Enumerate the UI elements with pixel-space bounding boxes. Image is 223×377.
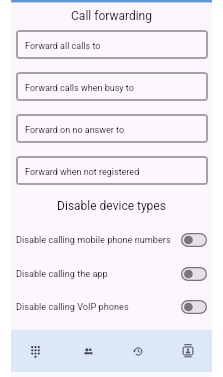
- button[interactable]: Disable calling the app: [11, 257, 212, 291]
- button[interactable]: Forward calls when busy to: [16, 72, 208, 101]
- button[interactable]: Voicemail: [166, 330, 210, 372]
- staticText: Forward when not registered: [25, 167, 140, 178]
- button[interactable]: Forward when not registered: [16, 156, 208, 185]
- staticText: Forward on no answer to: [25, 125, 125, 136]
- button[interactable]: Recents: [115, 330, 159, 372]
- button[interactable]: Forward on no answer to: [16, 114, 208, 143]
- button[interactable]: Disable calling VoIP phones: [11, 290, 212, 324]
- button[interactable]: Contacts: [66, 330, 110, 372]
- staticText: Call forwarding: [11, 9, 212, 23]
- staticText: Disable calling VoIP phones: [16, 302, 181, 313]
- staticText: Forward all calls to: [25, 41, 101, 52]
- staticText: Disable calling the app: [16, 269, 181, 280]
- button[interactable]: Disable calling mobile phone numbers: [11, 223, 212, 257]
- button[interactable]: Forward all calls to: [16, 30, 208, 59]
- staticText: Forward calls when busy to: [25, 83, 134, 94]
- staticText: Disable device types: [11, 199, 212, 213]
- button[interactable]: Dialpad: [13, 330, 57, 372]
- staticText: Disable calling mobile phone numbers: [16, 235, 181, 246]
